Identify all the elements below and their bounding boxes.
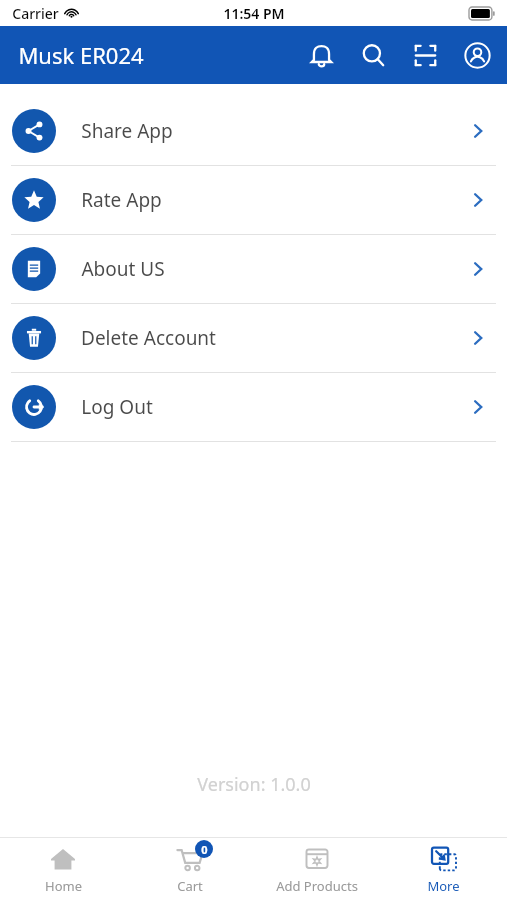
button[interactable]: More	[380, 839, 507, 900]
staticText: Rate App	[81, 187, 162, 213]
button[interactable]: Home	[0, 839, 126, 900]
staticText: About US	[81, 256, 165, 282]
button[interactable]: Share App	[0, 97, 507, 165]
button[interactable]: 0	[126, 839, 253, 900]
button[interactable]: Rate App	[0, 166, 507, 234]
staticText: 11:54 PM	[223, 4, 285, 23]
button[interactable]: Profile	[461, 39, 493, 71]
staticText: Musk ER024	[18, 40, 144, 70]
staticText: Carrier	[12, 4, 59, 23]
staticText: Version: 1.0.0	[197, 772, 311, 797]
button[interactable]: Notifications	[305, 39, 337, 71]
staticText: Share App	[81, 118, 173, 144]
staticText: Add Products	[276, 877, 358, 895]
button[interactable]: About US	[0, 235, 507, 303]
button[interactable]: Scan QR code	[409, 39, 441, 71]
staticText: Delete Account	[81, 325, 216, 351]
button[interactable]: Add Products	[253, 839, 380, 900]
staticText: Cart	[177, 877, 203, 895]
staticText: More	[427, 877, 460, 895]
button[interactable]: Search	[357, 39, 389, 71]
button[interactable]: Delete Account	[0, 304, 507, 372]
staticText: 0	[201, 842, 208, 857]
staticText: Home	[45, 877, 82, 895]
button[interactable]: Log Out	[0, 373, 507, 441]
staticText: Log Out	[81, 394, 153, 420]
